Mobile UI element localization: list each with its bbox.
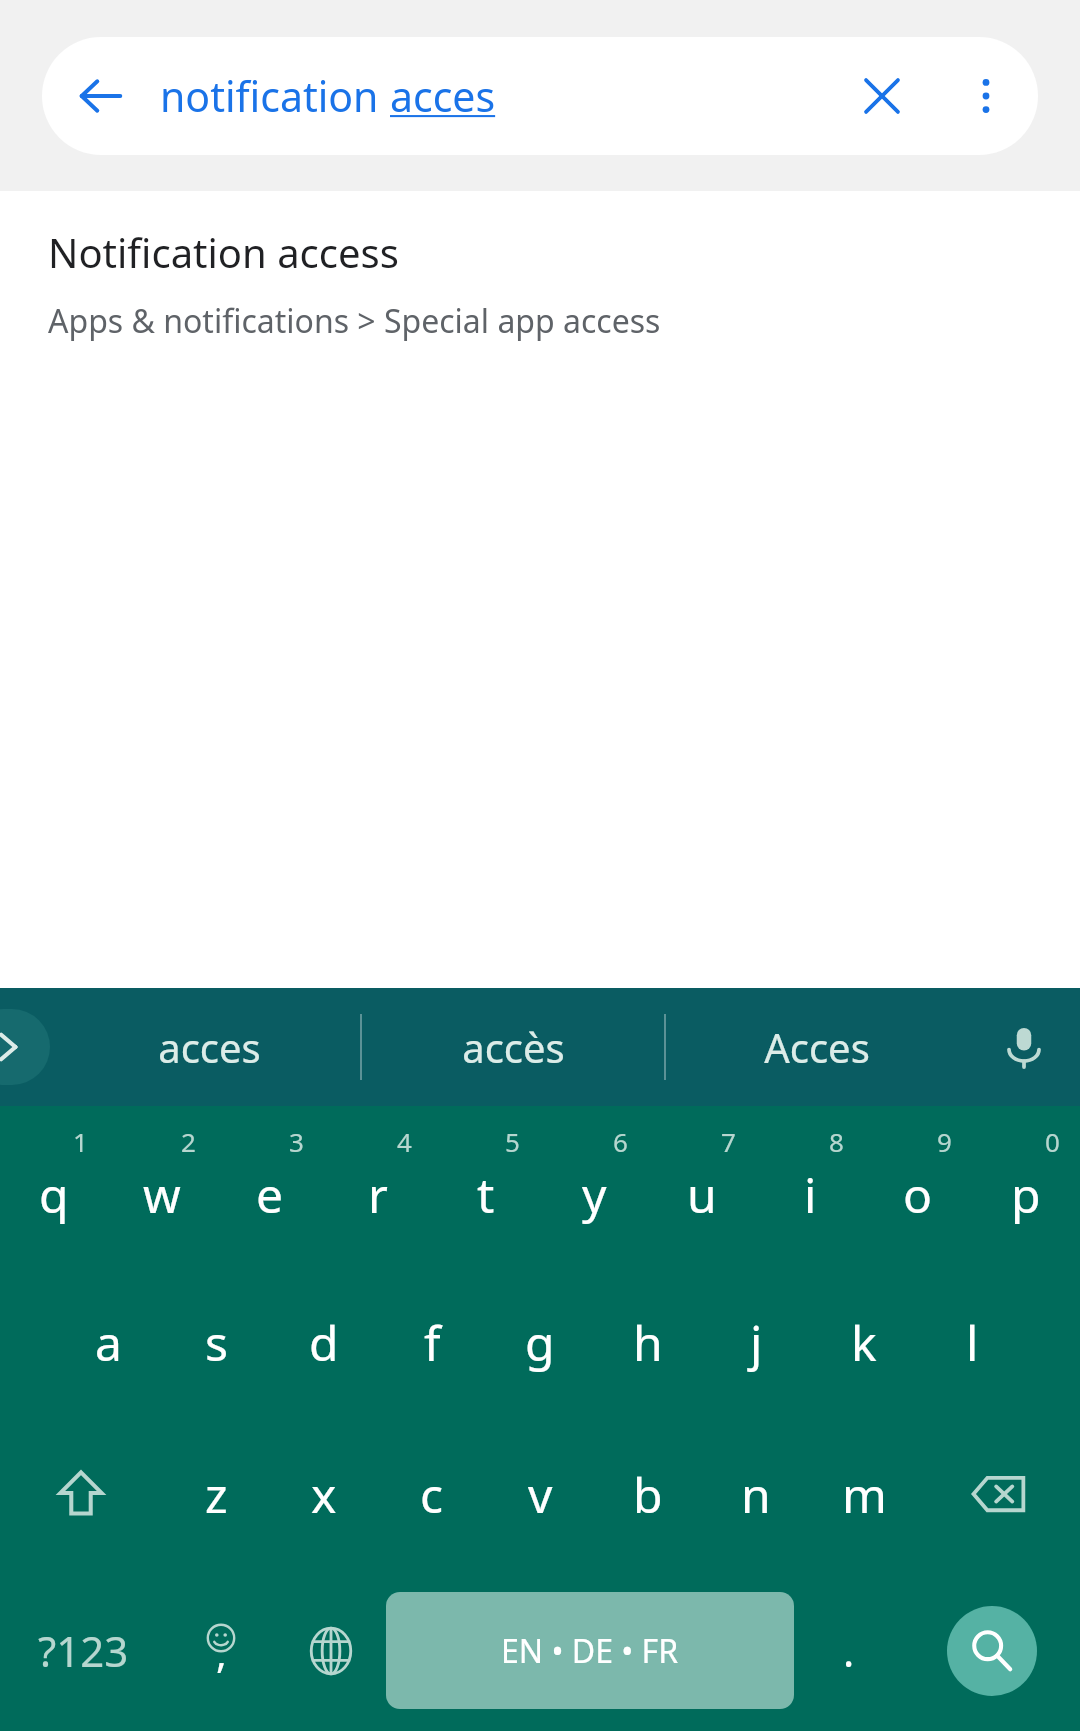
button[interactable]: d xyxy=(270,1266,378,1418)
staticText: , xyxy=(216,1625,227,1679)
button[interactable]: Voice input xyxy=(968,988,1080,1106)
staticText: 0 xyxy=(1045,1124,1060,1159)
button[interactable]: k xyxy=(810,1266,918,1418)
button[interactable]: Switch language xyxy=(276,1570,386,1731)
button[interactable]: acces xyxy=(58,988,360,1106)
staticText: 5 xyxy=(505,1124,520,1159)
staticText: Acces xyxy=(764,1020,870,1074)
staticText: u xyxy=(687,1162,717,1227)
button[interactable]: 7 xyxy=(648,1106,756,1266)
staticText: l xyxy=(966,1310,979,1375)
staticText: a xyxy=(95,1310,122,1375)
staticText: notification xyxy=(160,68,390,124)
staticText: . xyxy=(843,1622,855,1679)
button[interactable]: n xyxy=(702,1418,810,1570)
staticText: s xyxy=(205,1310,228,1375)
button[interactable]: h xyxy=(594,1266,702,1418)
staticText: i xyxy=(804,1162,817,1227)
button[interactable]: b xyxy=(594,1418,702,1570)
button[interactable]: 5 xyxy=(432,1106,540,1266)
button[interactable]: z xyxy=(162,1418,270,1570)
button[interactable]: Emoji xyxy=(166,1570,276,1731)
button[interactable]: Shift xyxy=(0,1418,162,1570)
staticText: o xyxy=(903,1162,933,1227)
button[interactable]: f xyxy=(378,1266,486,1418)
staticText: c xyxy=(420,1462,444,1527)
staticText: acces xyxy=(390,68,496,124)
button[interactable]: Notification access xyxy=(0,191,1080,365)
staticText: p xyxy=(1011,1162,1041,1227)
staticText: m xyxy=(842,1462,887,1527)
button[interactable]: . xyxy=(794,1570,904,1731)
button[interactable]: j xyxy=(702,1266,810,1418)
staticText: 7 xyxy=(721,1124,736,1159)
button[interactable]: v xyxy=(486,1418,594,1570)
button[interactable]: EN • DE • FR xyxy=(386,1592,794,1709)
staticText: h xyxy=(633,1310,663,1375)
staticText: t xyxy=(477,1162,495,1227)
button[interactable]: Back xyxy=(42,37,160,155)
staticText: v xyxy=(528,1462,553,1527)
button[interactable]: c xyxy=(378,1418,486,1570)
button[interactable]: More options xyxy=(934,37,1038,155)
button[interactable]: 8 xyxy=(756,1106,864,1266)
button[interactable]: Back xyxy=(42,37,1038,155)
staticText: ?123 xyxy=(38,1622,129,1679)
staticText: z xyxy=(205,1462,228,1527)
staticText: x xyxy=(311,1462,337,1527)
button[interactable]: 1 xyxy=(0,1106,108,1266)
button[interactable]: g xyxy=(486,1266,594,1418)
staticText: 6 xyxy=(613,1124,628,1159)
staticText: Notification access xyxy=(48,225,399,279)
button[interactable]: ?123 xyxy=(0,1570,166,1731)
button[interactable]: a xyxy=(54,1266,162,1418)
staticText: q xyxy=(39,1162,69,1227)
staticText: 9 xyxy=(937,1124,952,1159)
button[interactable]: 9 xyxy=(864,1106,972,1266)
button[interactable]: More suggestions xyxy=(0,1009,50,1085)
staticText: 3 xyxy=(289,1124,304,1159)
staticText: 2 xyxy=(181,1124,196,1159)
button[interactable]: 0 xyxy=(972,1106,1080,1266)
button[interactable]: Clear query xyxy=(830,37,934,155)
staticText: r xyxy=(368,1162,388,1227)
staticText: y xyxy=(582,1162,607,1227)
staticText: g xyxy=(525,1310,555,1375)
button[interactable]: x xyxy=(270,1418,378,1570)
button[interactable]: Backspace xyxy=(918,1418,1080,1570)
button[interactable]: m xyxy=(810,1418,918,1570)
staticText: 4 xyxy=(397,1124,412,1159)
staticText: 8 xyxy=(829,1124,844,1159)
staticText: f xyxy=(424,1310,441,1375)
staticText: w xyxy=(143,1162,181,1227)
staticText: d xyxy=(309,1310,339,1375)
button[interactable]: 3 xyxy=(216,1106,324,1266)
staticText: e xyxy=(256,1162,284,1227)
staticText: 1 xyxy=(73,1124,88,1159)
button[interactable]: 4 xyxy=(324,1106,432,1266)
button[interactable]: Acces xyxy=(666,988,968,1106)
staticText: n xyxy=(741,1462,771,1527)
staticText: EN • DE • FR xyxy=(501,1629,679,1673)
button[interactable]: accès xyxy=(362,988,664,1106)
staticText: j xyxy=(750,1310,763,1375)
staticText: b xyxy=(633,1462,663,1527)
button[interactable]: 2 xyxy=(108,1106,216,1266)
staticText: k xyxy=(851,1310,877,1375)
staticText: acces xyxy=(158,1020,261,1074)
button[interactable]: l xyxy=(918,1266,1026,1418)
button[interactable]: s xyxy=(162,1266,270,1418)
staticText: Apps & notifications > Special app acces… xyxy=(48,299,661,343)
button[interactable]: 6 xyxy=(540,1106,648,1266)
staticText: accès xyxy=(462,1020,565,1074)
button[interactable]: Search xyxy=(947,1606,1037,1696)
